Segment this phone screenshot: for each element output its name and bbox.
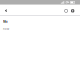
button[interactable]: Save <box>69 5 76 15</box>
staticText: now <box>3 27 9 31</box>
staticText: Mia <box>3 20 8 23</box>
button[interactable]: Info <box>63 5 69 15</box>
button[interactable]: Back <box>4 5 9 15</box>
